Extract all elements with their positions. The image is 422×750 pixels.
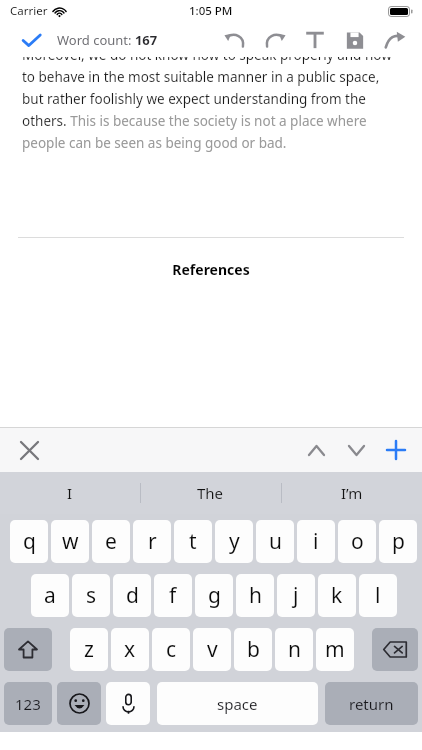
button[interactable]: i [297, 520, 335, 563]
button[interactable]: p [379, 520, 417, 563]
button[interactable]: e [92, 520, 130, 563]
button[interactable]: y [215, 520, 253, 563]
button[interactable]: m [316, 628, 354, 671]
button[interactable]: c [152, 628, 190, 671]
button[interactable]: s [72, 574, 110, 617]
button[interactable]: x [111, 628, 149, 671]
button[interactable]: Text style [300, 25, 330, 55]
staticText: d [126, 581, 139, 610]
staticText: References [0, 260, 422, 279]
staticText: return [349, 694, 394, 714]
button[interactable]: Backspace [372, 628, 418, 671]
button[interactable]: space [157, 682, 318, 725]
button[interactable]: Next field [340, 434, 372, 466]
button[interactable]: Save [340, 25, 370, 55]
button[interactable]: o [338, 520, 376, 563]
button[interactable]: z [70, 628, 108, 671]
button[interactable]: t [174, 520, 212, 563]
staticText: o [351, 527, 364, 556]
button[interactable]: q [10, 520, 48, 563]
button[interactable]: l [359, 574, 397, 617]
button[interactable]: b [234, 628, 272, 671]
staticText: z [84, 635, 94, 664]
staticText: l [375, 581, 381, 610]
button[interactable]: d [113, 574, 151, 617]
staticText: m [325, 635, 345, 664]
button[interactable]: Previous field [300, 434, 332, 466]
staticText: Moreover, we do not know how to speak pr… [22, 57, 400, 152]
staticText: I’m [341, 483, 363, 503]
staticText: b [247, 635, 260, 664]
button[interactable]: Redo [260, 25, 290, 55]
staticText: k [331, 581, 343, 610]
button[interactable]: Undo [220, 25, 250, 55]
staticText: a [44, 581, 56, 610]
staticText: s [86, 581, 97, 610]
button[interactable]: u [256, 520, 294, 563]
staticText: i [313, 527, 319, 556]
staticText: n [288, 635, 301, 664]
button[interactable]: 123 [4, 682, 52, 725]
button[interactable]: j [277, 574, 315, 617]
button[interactable]: w [51, 520, 89, 563]
staticText: j [293, 581, 299, 610]
staticText: g [208, 581, 221, 610]
staticText: The [197, 483, 224, 503]
staticText: v [207, 635, 218, 664]
button[interactable]: I [0, 472, 140, 514]
button[interactable]: The [140, 472, 281, 514]
button[interactable]: Dictation [106, 682, 150, 725]
staticText: r [148, 527, 157, 556]
button[interactable]: return [325, 682, 418, 725]
staticText: 1:05 PM [189, 3, 233, 19]
button[interactable]: I’m [281, 472, 422, 514]
staticText: q [23, 527, 36, 556]
button[interactable]: n [275, 628, 313, 671]
staticText: 123 [15, 694, 41, 714]
staticText: p [392, 527, 405, 556]
button[interactable]: f [154, 574, 192, 617]
button[interactable]: h [236, 574, 274, 617]
staticText: Word count: 167 [57, 31, 158, 49]
button[interactable]: Done [22, 31, 158, 49]
staticText: t [189, 527, 197, 556]
staticText: x [124, 635, 136, 664]
staticText: Carrier [10, 3, 48, 19]
other: Done [22, 33, 41, 48]
staticText: c [166, 635, 177, 664]
button[interactable]: Insert [380, 434, 412, 466]
staticText: w [62, 527, 79, 556]
button[interactable]: Shift [4, 628, 52, 671]
staticText: f [169, 581, 177, 610]
staticText: y [229, 527, 240, 556]
staticText: space [217, 694, 258, 714]
button[interactable]: g [195, 574, 233, 617]
button[interactable]: Emoji [57, 682, 101, 725]
staticText: u [269, 527, 282, 556]
staticText: h [249, 581, 262, 610]
button[interactable]: r [133, 520, 171, 563]
button[interactable]: a [31, 574, 69, 617]
staticText: I [67, 483, 73, 503]
button[interactable]: k [318, 574, 356, 617]
button[interactable]: Close keyboard [14, 435, 44, 465]
button[interactable]: Share [380, 25, 410, 55]
staticText: e [105, 527, 117, 556]
button[interactable]: v [193, 628, 231, 671]
